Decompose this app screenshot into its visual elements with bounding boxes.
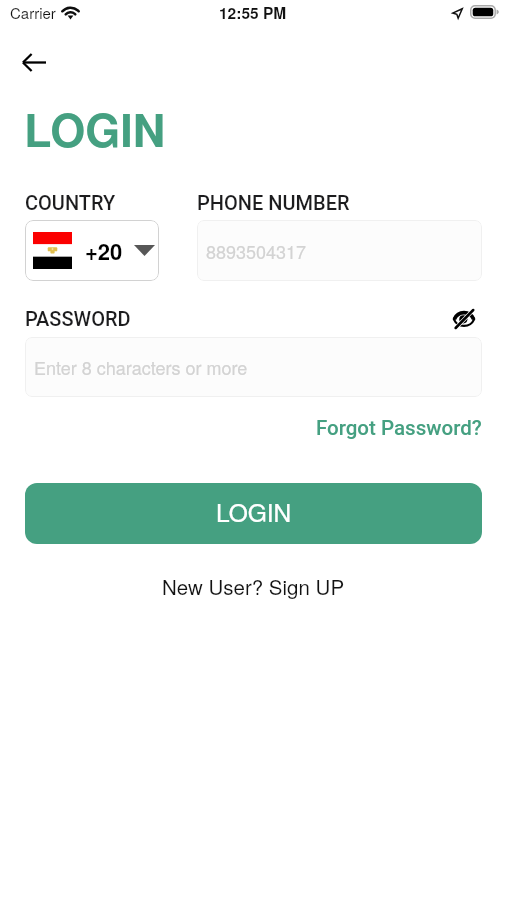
- button[interactable]: 8893504317: [197, 220, 482, 281]
- staticText: Forgot Password?: [316, 416, 482, 440]
- button[interactable]: Select country code: [25, 220, 159, 281]
- staticText: Enter 8 characters or more: [34, 354, 248, 380]
- staticText: PHONE NUMBER: [197, 191, 350, 214]
- staticText: New User? Sign UP: [162, 571, 345, 600]
- staticText: COUNTRY: [25, 191, 116, 214]
- staticText: 12:55 PM: [219, 2, 287, 24]
- button[interactable]: Forgot Password?: [312, 413, 482, 443]
- button[interactable]: Enter 8 characters or more: [25, 337, 482, 397]
- button[interactable]: Show password: [446, 302, 482, 336]
- staticText: 8893504317: [206, 238, 307, 264]
- button[interactable]: LOGIN: [25, 483, 482, 544]
- staticText: +20: [85, 235, 123, 267]
- staticText: LOGIN: [24, 96, 166, 160]
- staticText: PASSWORD: [25, 307, 131, 330]
- staticText: Carrier: [10, 2, 56, 23]
- button[interactable]: New User? Sign UP: [158, 569, 349, 601]
- staticText: LOGIN: [216, 494, 292, 529]
- button[interactable]: Back: [11, 40, 57, 84]
